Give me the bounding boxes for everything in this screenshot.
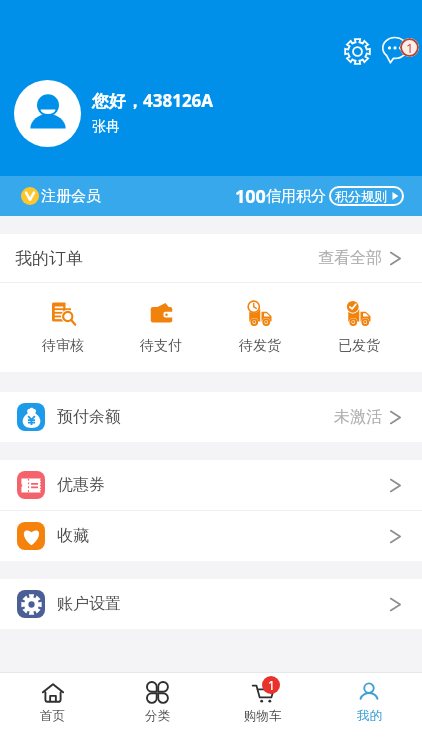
staticText: 购物车	[244, 708, 282, 724]
button[interactable]: 首页	[0, 673, 105, 724]
staticText: 预付余额	[57, 407, 121, 427]
staticText: 注册会员	[41, 187, 101, 206]
staticText: 待审核	[42, 337, 84, 355]
button[interactable]: Avatar	[14, 80, 81, 147]
button[interactable]: 我的订单	[0, 234, 422, 282]
button[interactable]: 已发货	[309, 294, 408, 361]
button[interactable]: 待支付	[112, 294, 210, 361]
button[interactable]: 优惠券	[0, 460, 422, 510]
button[interactable]: 积分规则	[329, 186, 404, 206]
staticText: 我的	[357, 708, 382, 724]
staticText: 信用积分	[266, 187, 326, 206]
button[interactable]: 待审核	[14, 294, 112, 361]
staticText: 张冉	[92, 118, 120, 136]
staticText: 100	[235, 184, 266, 209]
button[interactable]: 待发货	[210, 294, 309, 361]
staticText: 未激活	[334, 407, 382, 427]
staticText: 1	[268, 677, 275, 693]
staticText: 我的订单	[15, 248, 83, 269]
button[interactable]: 1	[210, 673, 316, 724]
button[interactable]: 收藏	[0, 511, 422, 561]
staticText: 积分规则	[335, 188, 387, 204]
staticText: 首页	[40, 708, 65, 724]
staticText: 待支付	[140, 337, 182, 355]
staticText: 账户设置	[57, 594, 121, 614]
staticText: 您好，438126A	[92, 89, 214, 112]
button[interactable]: 账户设置	[0, 579, 422, 629]
button[interactable]: 我的	[316, 673, 422, 724]
button[interactable]: 分类	[105, 673, 210, 724]
staticText: 分类	[145, 708, 170, 724]
staticText: 收藏	[57, 526, 89, 546]
staticText: 1	[406, 39, 414, 57]
button[interactable]: Messages	[380, 36, 422, 78]
staticText: 优惠券	[57, 475, 105, 495]
staticText: 待发货	[239, 337, 281, 355]
staticText: 已发货	[338, 337, 380, 355]
button[interactable]: Settings	[340, 34, 374, 68]
button[interactable]: 预付余额	[0, 392, 422, 442]
staticText: 查看全部	[318, 248, 382, 268]
